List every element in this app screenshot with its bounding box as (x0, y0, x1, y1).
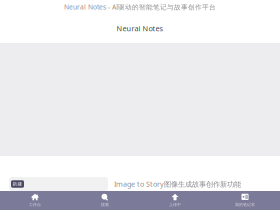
button[interactable]: 上传中 (140, 191, 210, 210)
staticText: 搜索 (101, 202, 109, 207)
staticText: Image to Story图像生成故事创作新功能 (114, 179, 241, 189)
staticText: 上传中 (169, 202, 181, 207)
staticText: 我的笔记本 (235, 202, 255, 207)
button[interactable]: 工作台 (0, 191, 70, 210)
button[interactable]: 我的笔记本 (210, 191, 280, 210)
button[interactable]: 新建 (11, 180, 24, 188)
staticText: Neural Notes - AI驱动的智能笔记与故事创作平台 (64, 2, 216, 11)
staticText: 工作台 (29, 202, 41, 207)
staticText: 新建 (12, 181, 22, 187)
button[interactable]: 搜索 (70, 191, 140, 210)
staticText: Neural Notes (116, 23, 163, 33)
